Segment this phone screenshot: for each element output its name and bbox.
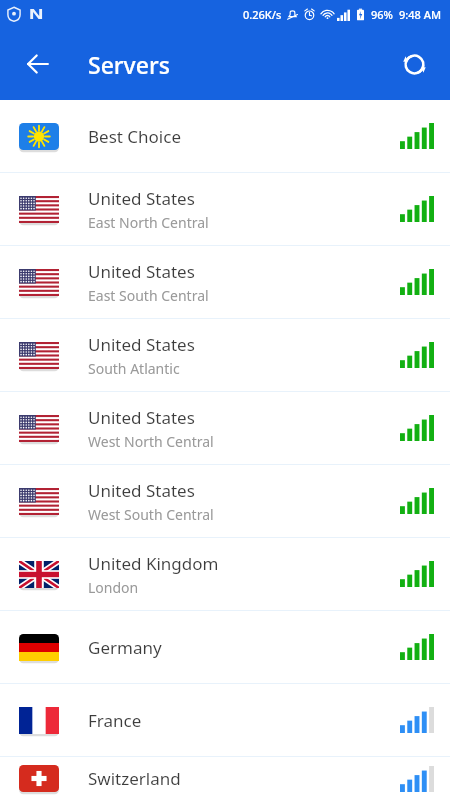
button[interactable]: United States: [0, 392, 450, 464]
button[interactable]: Best Choice: [0, 100, 450, 172]
staticText: West North Central: [88, 432, 214, 451]
staticText: Best Choice: [88, 125, 182, 148]
button[interactable]: Back: [14, 40, 62, 88]
staticText: South Atlantic: [88, 359, 180, 378]
staticText: United States: [88, 479, 195, 502]
staticText: United Kingdom: [88, 552, 219, 575]
staticText: Servers: [88, 49, 170, 80]
button[interactable]: United States: [0, 319, 450, 391]
staticText: France: [88, 709, 142, 732]
staticText: United States: [88, 260, 195, 283]
button[interactable]: United Kingdom: [0, 538, 450, 610]
staticText: Switzerland: [88, 767, 181, 790]
staticText: London: [88, 578, 139, 597]
button[interactable]: United States: [0, 246, 450, 318]
staticText: 96%: [371, 7, 393, 22]
staticText: United States: [88, 406, 195, 429]
button[interactable]: Refresh: [390, 40, 438, 88]
staticText: East North Central: [88, 213, 209, 232]
button[interactable]: Switzerland: [0, 757, 450, 800]
staticText: West South Central: [88, 505, 214, 524]
button[interactable]: Germany: [0, 611, 450, 683]
staticText: United States: [88, 187, 195, 210]
staticText: East South Central: [88, 286, 209, 305]
staticText: United States: [88, 333, 195, 356]
button[interactable]: United States: [0, 173, 450, 245]
staticText: Germany: [88, 636, 162, 659]
staticText: 9:48 AM: [399, 7, 442, 22]
button[interactable]: France: [0, 684, 450, 756]
staticText: 0.26K/s: [243, 7, 282, 22]
button[interactable]: United States: [0, 465, 450, 537]
